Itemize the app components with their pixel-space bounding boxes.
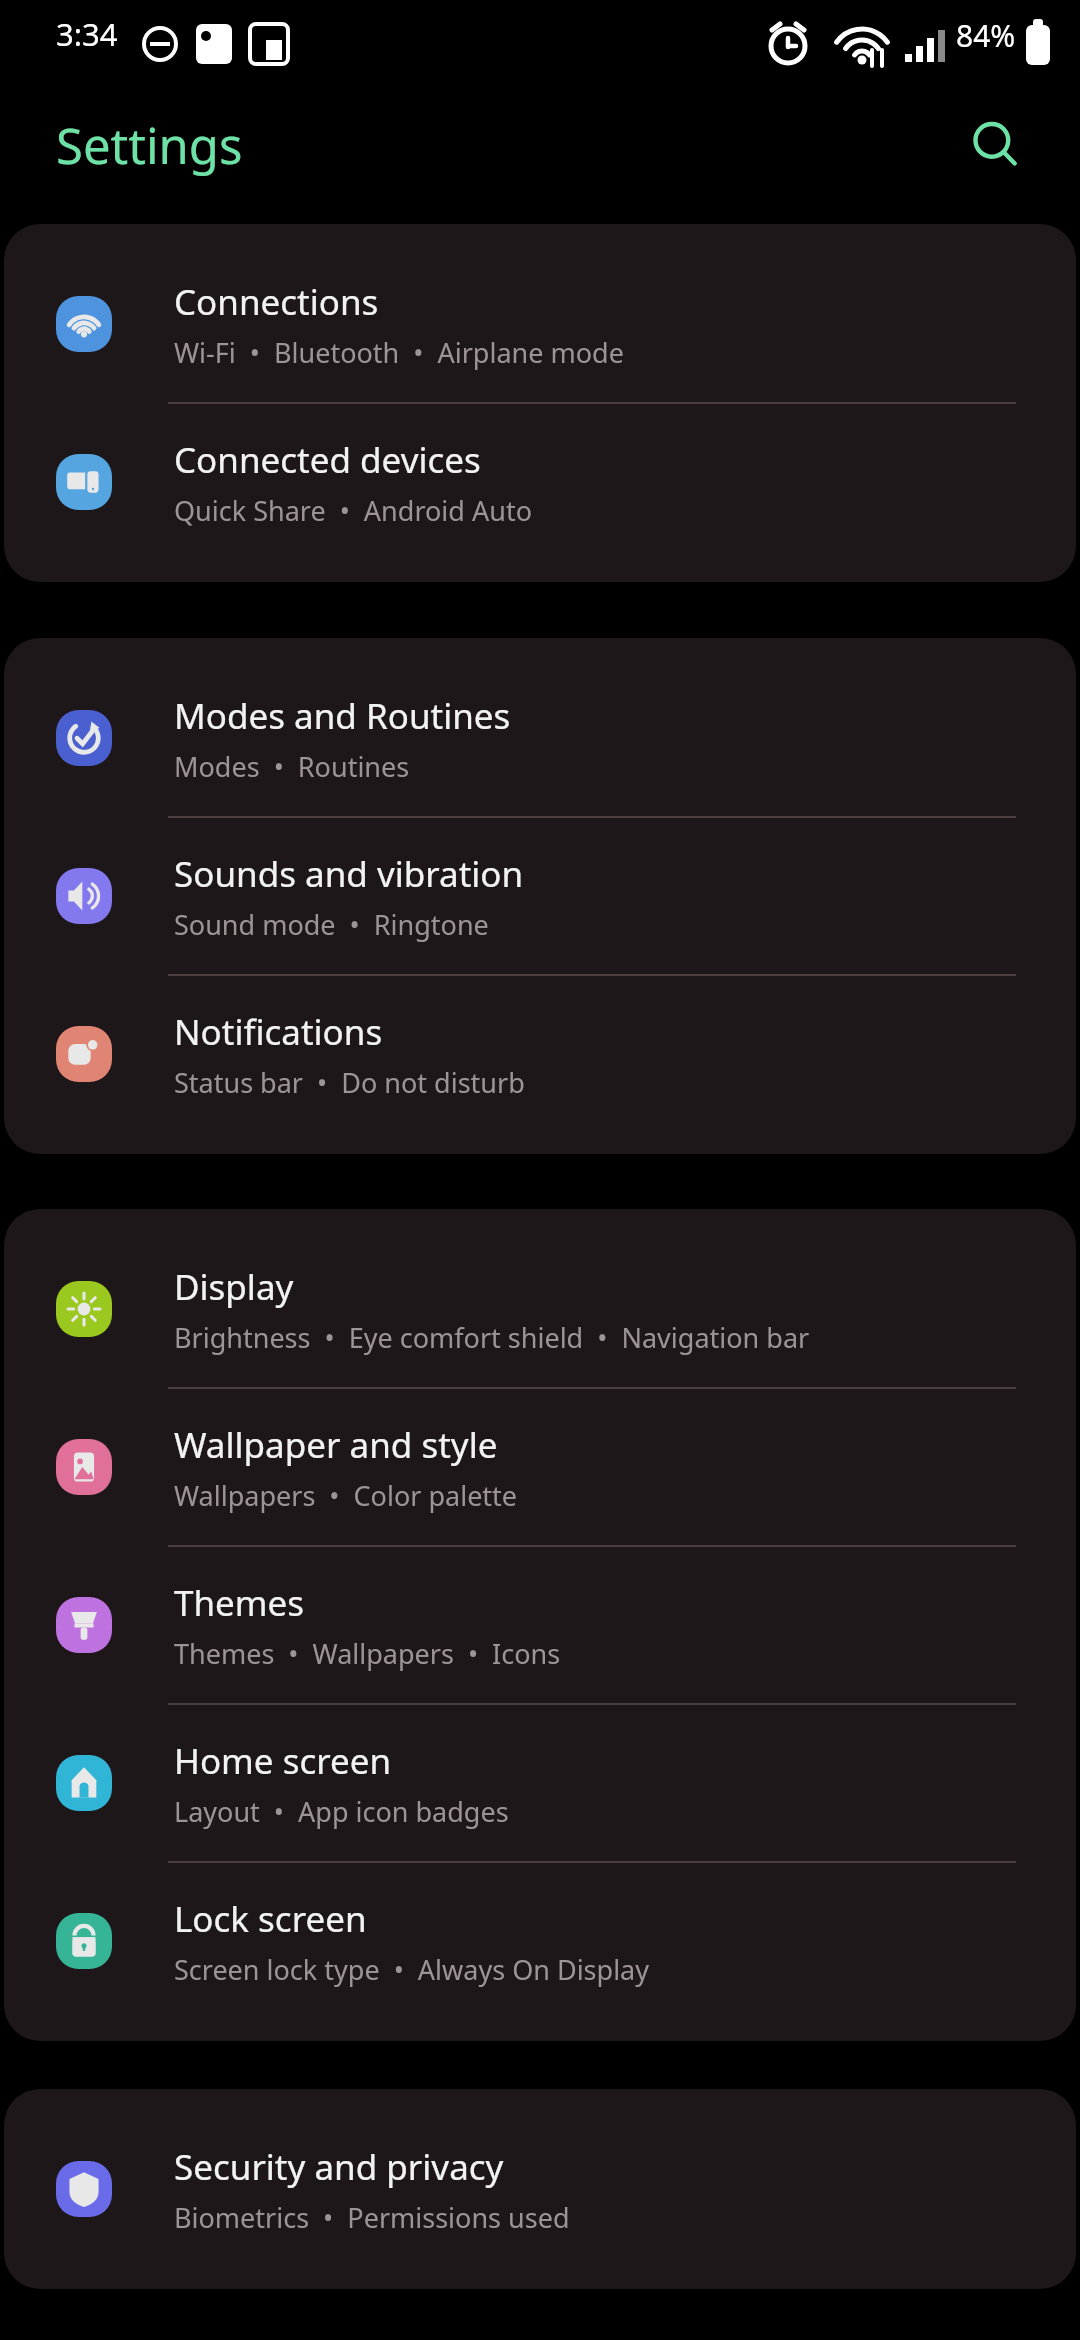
staticText: Home screen: [174, 1737, 392, 1785]
button[interactable]: Connected devices: [4, 404, 1076, 560]
staticText: Themes • Wallpapers • Icons: [174, 1635, 561, 1672]
staticText: Status bar • Do not disturb: [174, 1064, 525, 1101]
staticText: Settings: [56, 112, 243, 179]
button[interactable]: Lock screen: [4, 1863, 1076, 2019]
staticText: 84%: [956, 15, 1016, 56]
staticText: Sound mode • Ringtone: [174, 906, 489, 943]
staticText: Lock screen: [174, 1895, 367, 1943]
button[interactable]: Sounds and vibration: [4, 818, 1076, 976]
button[interactable]: Themes: [4, 1547, 1076, 1705]
staticText: Modes and Routines: [174, 692, 511, 740]
staticText: Sounds and vibration: [174, 850, 524, 898]
button[interactable]: Search settings: [950, 99, 1042, 191]
button[interactable]: Wallpaper and style: [4, 1389, 1076, 1547]
button[interactable]: Home screen: [4, 1705, 1076, 1863]
staticText: Connected devices: [174, 436, 481, 484]
button[interactable]: Connections: [4, 246, 1076, 404]
staticText: Brightness • Eye comfort shield • Naviga…: [174, 1319, 810, 1356]
staticText: Biometrics • Permissions used: [174, 2199, 570, 2236]
button[interactable]: Security and privacy: [4, 2111, 1076, 2267]
button[interactable]: Notifications: [4, 976, 1076, 1132]
staticText: Quick Share • Android Auto: [174, 492, 532, 529]
staticText: Connections: [174, 278, 379, 326]
button[interactable]: Modes and Routines: [4, 660, 1076, 818]
staticText: Screen lock type • Always On Display: [174, 1951, 650, 1988]
staticText: Layout • App icon badges: [174, 1793, 509, 1830]
staticText: Notifications: [174, 1008, 383, 1056]
staticText: 3:34: [56, 13, 118, 55]
staticText: Wi-Fi • Bluetooth • Airplane mode: [174, 334, 624, 371]
staticText: Wallpaper and style: [174, 1421, 498, 1469]
staticText: Security and privacy: [174, 2143, 504, 2191]
button[interactable]: Display: [4, 1231, 1076, 1389]
staticText: Themes: [174, 1579, 305, 1627]
staticText: Modes • Routines: [174, 748, 410, 785]
staticText: Display: [174, 1263, 294, 1311]
staticText: Wallpapers • Color palette: [174, 1477, 518, 1514]
